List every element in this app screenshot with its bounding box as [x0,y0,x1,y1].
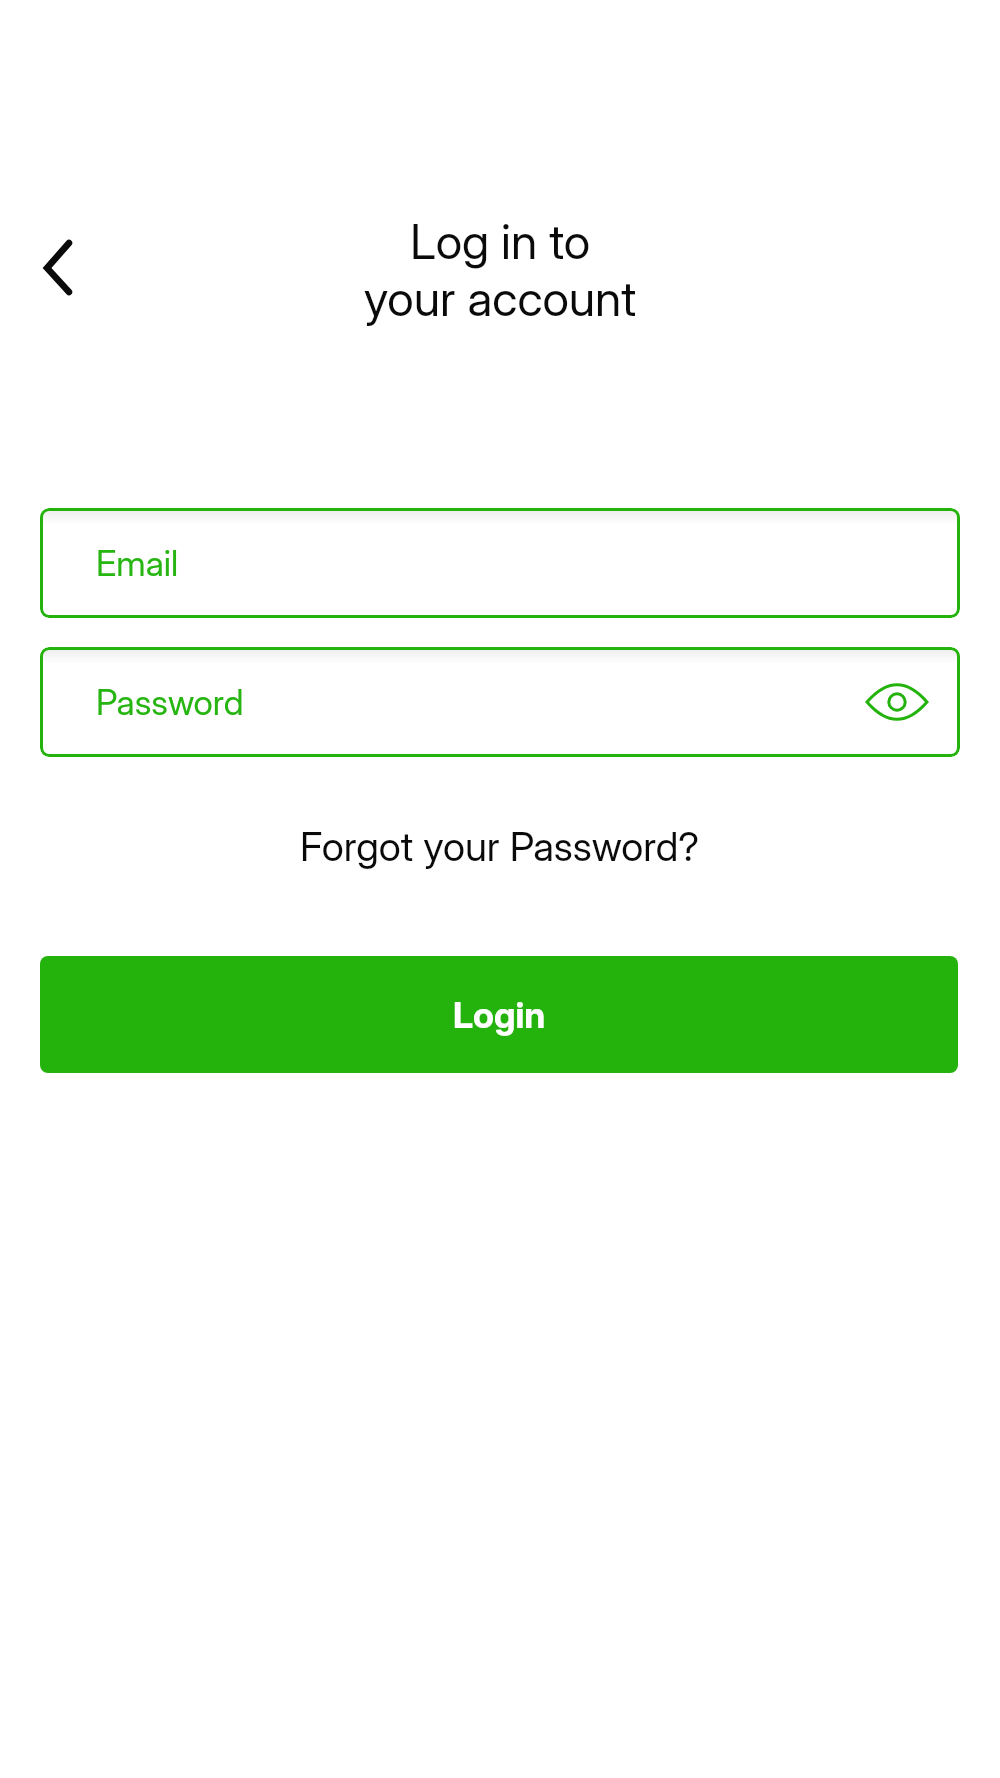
button[interactable] [867,684,927,720]
staticText: Password [96,681,244,723]
button[interactable]: Email [40,508,960,618]
staticText: Login [453,993,546,1037]
button[interactable]: Forgot your Password? [300,822,700,870]
button[interactable] [30,228,92,308]
button[interactable]: Password [40,647,960,757]
staticText: Email [96,542,179,584]
staticText: Log in to your account [0,212,1000,328]
button[interactable]: Login [40,956,958,1073]
